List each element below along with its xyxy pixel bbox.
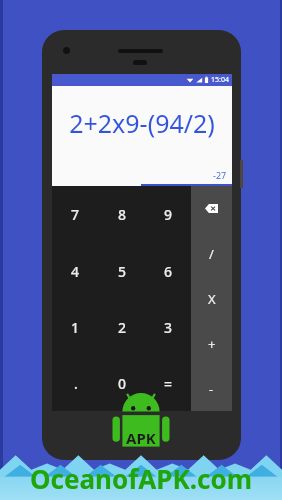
button[interactable]: + xyxy=(191,321,232,366)
staticText: 1 xyxy=(71,318,80,337)
button[interactable]: = xyxy=(145,355,191,411)
button[interactable]: - xyxy=(191,366,232,411)
staticText: . xyxy=(74,374,78,393)
staticText: 0 xyxy=(118,374,127,393)
staticText: 7 xyxy=(71,205,80,224)
staticText: / xyxy=(209,245,214,263)
staticText: = xyxy=(164,374,173,393)
button[interactable]: 0 xyxy=(99,355,145,411)
button[interactable]: . xyxy=(52,355,99,411)
staticText: 15:04 xyxy=(211,75,229,85)
staticText: - xyxy=(209,380,214,398)
button[interactable]: 6 xyxy=(145,243,191,299)
button[interactable]: 8 xyxy=(99,186,145,243)
staticText: OceanofAPK.com xyxy=(30,461,253,496)
staticText: X xyxy=(208,290,216,308)
button[interactable]: 4 xyxy=(52,243,99,299)
staticText: 4 xyxy=(71,262,80,281)
staticText: 5 xyxy=(118,262,127,281)
button[interactable]: X xyxy=(191,276,232,321)
button[interactable]: 9 xyxy=(145,186,191,243)
staticText: -27 xyxy=(213,169,227,181)
staticText: 2+2x9-(94/2) xyxy=(69,106,215,140)
button[interactable]: / xyxy=(191,231,232,276)
staticText: + xyxy=(208,335,216,353)
button[interactable]: 5 xyxy=(99,243,145,299)
button[interactable]: 1 xyxy=(52,299,99,355)
staticText: 8 xyxy=(118,205,127,224)
staticText: APK xyxy=(126,428,156,448)
button[interactable]: 2 xyxy=(99,299,145,355)
staticText: 6 xyxy=(164,262,173,281)
button[interactable]: 7 xyxy=(52,186,99,243)
staticText: 9 xyxy=(164,205,173,224)
button[interactable]: Backspace xyxy=(191,186,232,231)
button[interactable]: 3 xyxy=(145,299,191,355)
staticText: 2 xyxy=(118,318,127,337)
staticText: 3 xyxy=(164,318,173,337)
